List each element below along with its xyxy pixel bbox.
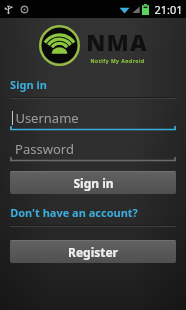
staticText: Don't have an account? [10, 205, 138, 220]
staticText: 21:01 [154, 2, 183, 17]
button[interactable]: Password [10, 137, 176, 162]
button[interactable]: Register [10, 240, 176, 263]
staticText: Notify My Android [90, 58, 145, 65]
staticText: Sign in [10, 77, 47, 92]
staticText: Register [68, 244, 118, 260]
staticText: Username [15, 109, 79, 127]
button[interactable]: Username [10, 106, 176, 131]
button[interactable]: Sign in [10, 171, 176, 194]
staticText: Sign in [73, 175, 114, 191]
staticText: NMA [86, 26, 148, 57]
staticText: Password [15, 140, 74, 158]
